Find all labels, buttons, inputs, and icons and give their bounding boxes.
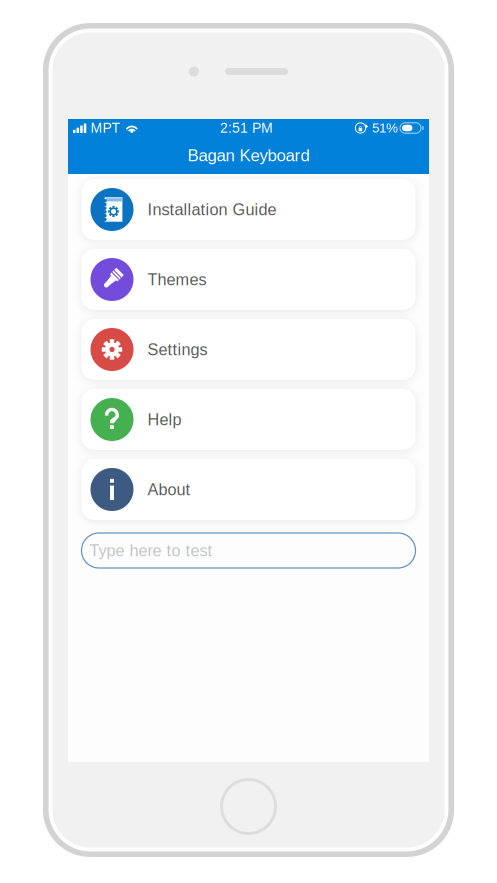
button[interactable]: Type here to test bbox=[81, 533, 415, 568]
staticText: About bbox=[147, 480, 190, 499]
staticText: 51% bbox=[372, 121, 398, 135]
button[interactable]: About bbox=[81, 459, 415, 520]
staticText: Type here to test bbox=[89, 541, 212, 560]
staticText: Settings bbox=[147, 340, 207, 359]
staticText: MPT bbox=[91, 120, 121, 136]
button[interactable]: Installation Guide bbox=[81, 179, 415, 240]
staticText: Themes bbox=[147, 270, 206, 289]
button[interactable]: Themes bbox=[81, 249, 415, 310]
button[interactable]: Help bbox=[81, 389, 415, 450]
staticText: Bagan Keyboard bbox=[187, 146, 309, 165]
button[interactable]: Settings bbox=[81, 319, 415, 380]
staticText: Installation Guide bbox=[147, 200, 276, 219]
staticText: 2:51 PM bbox=[220, 120, 273, 136]
staticText: Help bbox=[147, 410, 181, 429]
